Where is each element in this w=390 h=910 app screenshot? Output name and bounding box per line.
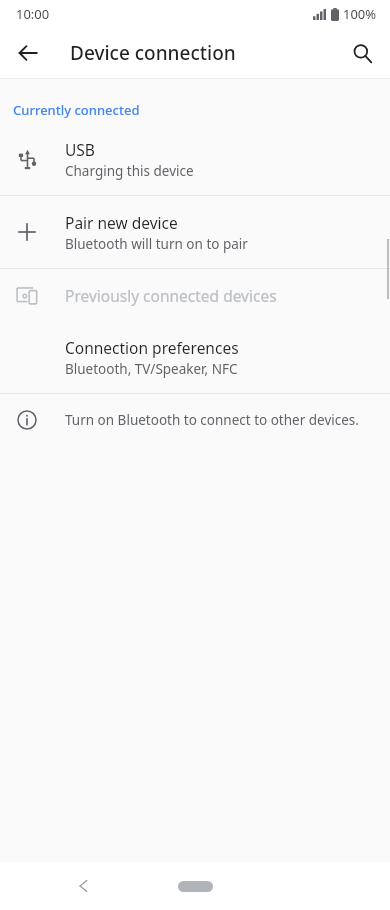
- staticText: Bluetooth will turn on to pair: [65, 235, 248, 253]
- button[interactable]: Turn on Bluetooth to connect to other de…: [0, 394, 390, 446]
- button[interactable]: Back: [62, 864, 106, 908]
- staticText: 10:00: [16, 5, 50, 23]
- button[interactable]: Search: [340, 31, 384, 75]
- button[interactable]: Connection preferences: [0, 321, 390, 393]
- staticText: 100%: [343, 5, 377, 23]
- button[interactable]: Home: [175, 875, 215, 897]
- staticText: Connection preferences: [65, 337, 239, 358]
- staticText: USB: [65, 139, 95, 160]
- button[interactable]: USB: [0, 123, 390, 195]
- button[interactable]: Previously connected devices: [0, 269, 390, 321]
- staticText: Turn on Bluetooth to connect to other de…: [65, 411, 359, 429]
- staticText: Previously connected devices: [65, 285, 277, 306]
- staticText: Device connection: [70, 40, 236, 66]
- staticText: Bluetooth, TV/Speaker, NFC: [65, 360, 238, 378]
- staticText: Pair new device: [65, 212, 178, 233]
- button[interactable]: Pair new device: [0, 196, 390, 268]
- staticText: Currently connected: [13, 101, 140, 119]
- staticText: Charging this device: [65, 162, 194, 180]
- button[interactable]: Back: [6, 31, 50, 75]
